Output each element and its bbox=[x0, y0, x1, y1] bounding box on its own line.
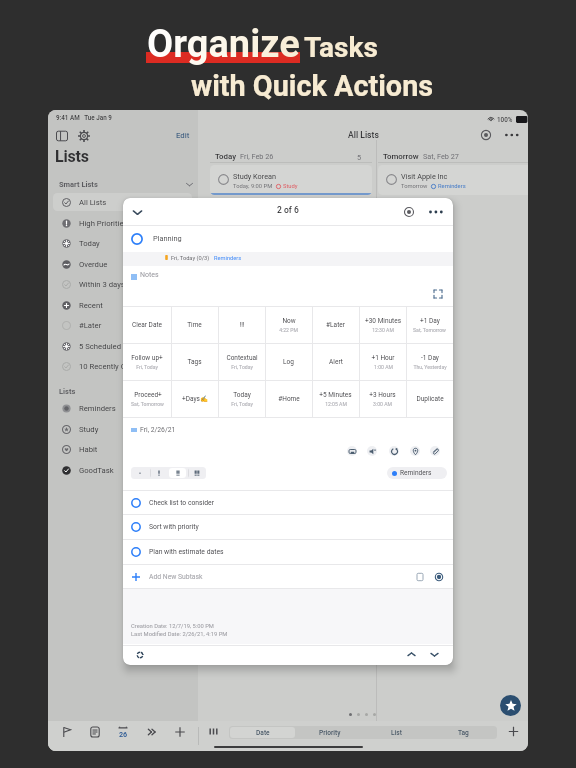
button[interactable]: +Days✍ bbox=[171, 380, 218, 417]
button[interactable]: Favorites bbox=[500, 695, 521, 716]
button[interactable]: Follow up+ bbox=[123, 343, 171, 380]
button[interactable]: Now bbox=[265, 306, 312, 343]
staticText: !!! bbox=[239, 321, 245, 329]
button[interactable]: Tag bbox=[431, 727, 496, 738]
staticText: Fri, Today bbox=[231, 401, 253, 407]
button[interactable]: Speak bbox=[367, 446, 377, 456]
button[interactable]: Date bbox=[230, 727, 295, 738]
staticText: Fri, Today bbox=[136, 364, 158, 370]
button[interactable]: Reminders bbox=[53, 399, 192, 417]
button[interactable]: Add task bbox=[507, 725, 520, 738]
button[interactable]: 5 Scheduled bbox=[53, 337, 192, 355]
button[interactable]: Sort with priority bbox=[123, 514, 453, 539]
staticText: Planning bbox=[153, 234, 182, 243]
button[interactable]: Add New Subtask bbox=[123, 564, 453, 589]
button[interactable]: Study Korean bbox=[210, 165, 372, 195]
button[interactable]: Within 3 days bbox=[53, 275, 192, 293]
button[interactable]: Proceed+ bbox=[123, 380, 171, 417]
button[interactable]: Notes bbox=[88, 725, 102, 739]
button[interactable]: Expand notes bbox=[433, 289, 443, 299]
staticText: Creation Date: 12/7/19, 5:00 PM bbox=[131, 623, 214, 630]
staticText: 10 Recently Completed bbox=[79, 362, 158, 371]
button[interactable]: Edit bbox=[176, 131, 190, 140]
button[interactable]: Add bbox=[173, 725, 187, 739]
button[interactable] bbox=[132, 468, 148, 478]
button[interactable]: #Later bbox=[312, 306, 359, 343]
staticText: Fri, Today (0/3) bbox=[171, 255, 210, 262]
staticText: +1 Hour bbox=[371, 354, 395, 362]
staticText: 1:00 AM bbox=[374, 364, 393, 370]
button[interactable]: Today bbox=[218, 380, 265, 417]
button[interactable]: Tags bbox=[171, 343, 218, 380]
staticText: Thu, Yesterday bbox=[413, 364, 447, 370]
button[interactable]: Flag bbox=[60, 725, 74, 739]
button[interactable]: Focus mode bbox=[481, 130, 491, 140]
button[interactable]: Toggle sidebar bbox=[56, 130, 68, 142]
staticText: +3 Hours bbox=[369, 391, 396, 399]
button[interactable]: #Home bbox=[265, 380, 312, 417]
button[interactable]: +5 Minutes bbox=[312, 380, 359, 417]
button[interactable] bbox=[169, 468, 186, 478]
button[interactable]: Skip bbox=[145, 725, 159, 739]
staticText: +1 Day bbox=[420, 317, 440, 325]
staticText: 100% bbox=[497, 116, 513, 123]
button[interactable]: Timer bbox=[404, 207, 414, 217]
button[interactable]: Alert bbox=[312, 343, 359, 380]
staticText: +30 Minutes bbox=[365, 317, 401, 325]
button[interactable]: Clear Date bbox=[123, 306, 171, 343]
button[interactable]: 10 Recently Completed bbox=[53, 357, 192, 375]
staticText: Within 3 days bbox=[79, 280, 125, 289]
button[interactable]: Log bbox=[265, 343, 312, 380]
staticText: Log bbox=[283, 358, 294, 366]
staticText: #Later bbox=[326, 321, 345, 329]
button[interactable]: Today bbox=[53, 234, 192, 252]
button[interactable]: #Later bbox=[53, 316, 192, 334]
button[interactable]: +1 Hour bbox=[359, 343, 406, 380]
button[interactable]: +1 Day bbox=[406, 306, 453, 343]
button[interactable]: Collapse bbox=[131, 206, 144, 219]
button[interactable]: Overdue bbox=[53, 255, 192, 273]
button[interactable]: Plan with estimate dates bbox=[123, 539, 453, 564]
button[interactable]: Contextual bbox=[218, 343, 265, 380]
button[interactable]: Record bbox=[435, 573, 443, 581]
button[interactable]: Keyboard bbox=[347, 446, 357, 456]
button[interactable]: Reminders bbox=[387, 467, 447, 479]
staticText: Fri, Today bbox=[231, 364, 253, 370]
button[interactable]: List bbox=[364, 727, 429, 738]
button[interactable]: Duplicate bbox=[406, 380, 453, 417]
button[interactable]: Settings bbox=[78, 130, 90, 142]
button[interactable]: Next item bbox=[429, 649, 440, 660]
button[interactable]: High Priorities bbox=[53, 214, 192, 232]
button[interactable]: +30 Minutes bbox=[359, 306, 406, 343]
button[interactable]: Time bbox=[171, 306, 218, 343]
button[interactable] bbox=[150, 468, 167, 478]
button[interactable]: GoodTask bbox=[53, 461, 192, 479]
staticText: Last Modified Date: 2/26/21, 4:19 PM bbox=[131, 631, 228, 638]
button[interactable]: More options bbox=[505, 132, 519, 138]
button[interactable]: Attachment bbox=[430, 446, 440, 456]
button[interactable]: All Lists bbox=[53, 193, 192, 211]
button[interactable]: Location bbox=[410, 446, 420, 456]
button[interactable]: Sync bbox=[136, 651, 144, 659]
staticText: Follow up+ bbox=[131, 354, 163, 362]
button[interactable]: Habit bbox=[53, 440, 192, 458]
staticText: 9:41 AM Tue Jan 9 bbox=[56, 114, 112, 121]
button[interactable]: More bbox=[429, 209, 443, 215]
button[interactable]: Priority bbox=[297, 727, 362, 738]
button[interactable]: Templates bbox=[416, 573, 424, 581]
button[interactable]: +3 Hours bbox=[359, 380, 406, 417]
staticText: Lists bbox=[55, 147, 89, 166]
button[interactable]: -1 Day bbox=[406, 343, 453, 380]
button[interactable]: Sort order bbox=[208, 726, 219, 737]
button[interactable]: Recent bbox=[53, 296, 192, 314]
button[interactable]: Calendar bbox=[116, 725, 130, 739]
staticText: Tasks bbox=[304, 31, 378, 64]
button[interactable]: Visit Apple Inc bbox=[378, 165, 528, 195]
button[interactable]: Study bbox=[53, 420, 192, 438]
button[interactable] bbox=[188, 468, 205, 478]
staticText: Now bbox=[282, 317, 296, 325]
button[interactable]: Repeat bbox=[389, 446, 399, 456]
button[interactable]: Check list to consider bbox=[123, 490, 453, 515]
button[interactable]: Previous item bbox=[406, 649, 417, 660]
button[interactable]: !!! bbox=[218, 306, 265, 343]
